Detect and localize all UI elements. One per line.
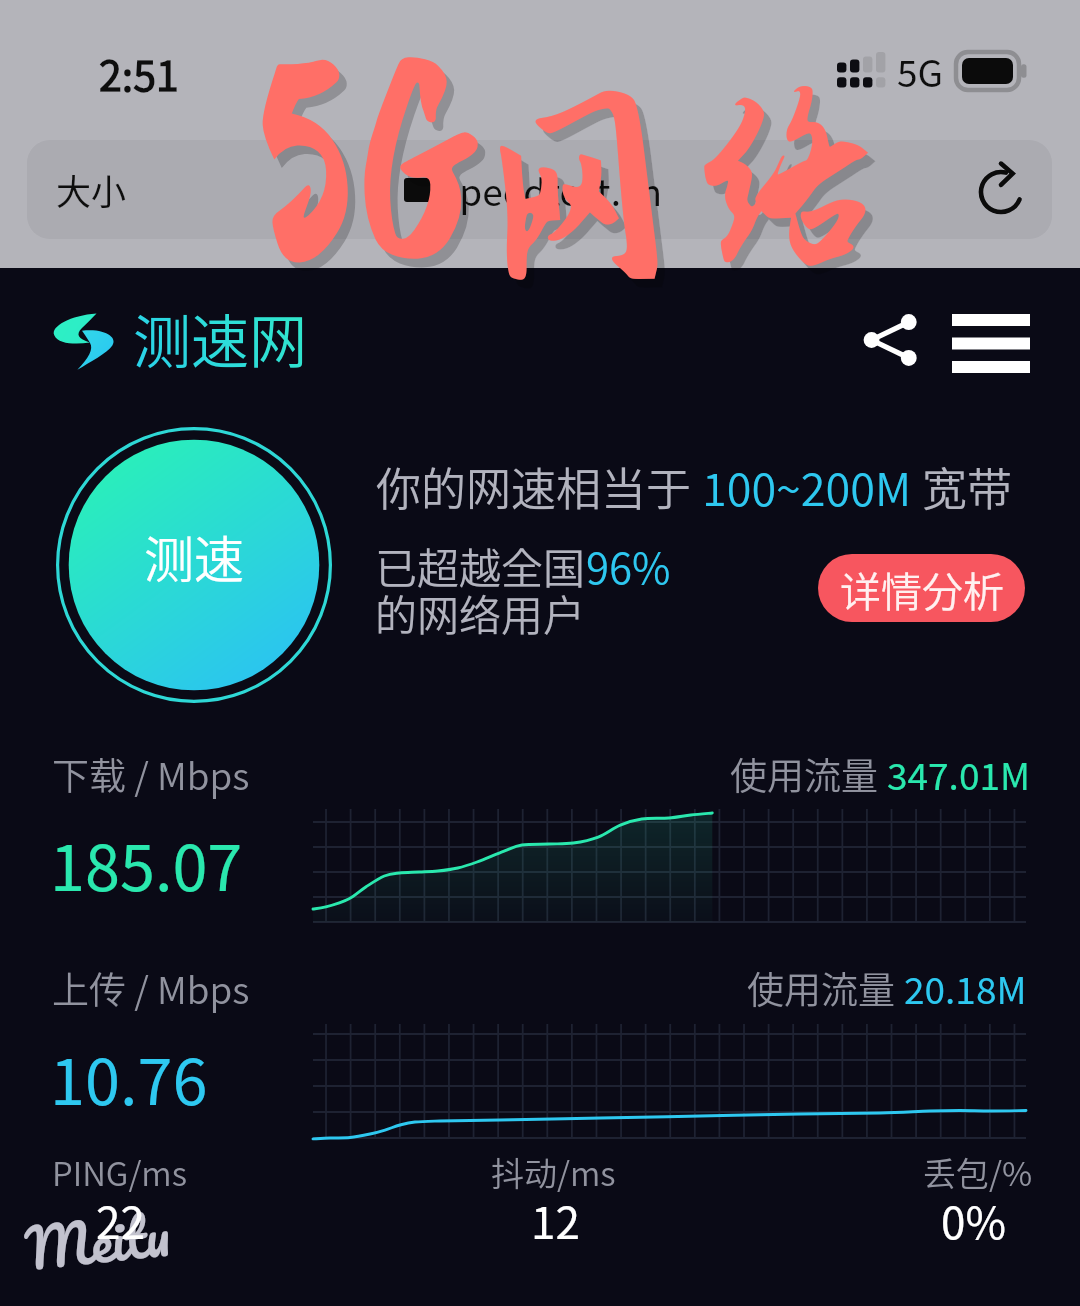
button[interactable]: Share <box>852 300 932 380</box>
staticText: 5G <box>253 33 490 316</box>
staticText: 详情分析 <box>840 559 1004 618</box>
staticText: 12 <box>531 1188 580 1252</box>
staticText: 网络 <box>475 68 906 322</box>
staticText: 100~200M <box>702 454 912 519</box>
staticText: speedtest.cn <box>442 163 663 217</box>
button[interactable]: Reload <box>970 159 1032 221</box>
staticText: 大小 <box>56 164 127 215</box>
staticText: 网络 <box>467 59 899 314</box>
staticText: 下载 / Mbps <box>52 747 250 801</box>
staticText: 抖动/ms <box>491 1148 616 1196</box>
staticText: 上传 / Mbps <box>52 961 250 1015</box>
staticText: PING/ms <box>52 1148 187 1196</box>
staticText: 22 <box>96 1188 145 1252</box>
staticText: 5G <box>246 24 483 308</box>
button[interactable]: 测速 <box>56 427 332 703</box>
staticText: 5G <box>897 44 944 98</box>
staticText: 2:51 <box>99 43 179 102</box>
button[interactable]: 大小 <box>27 140 1052 239</box>
staticText: 使用流量 <box>747 961 904 1015</box>
staticText: 已超越全国 <box>375 535 586 596</box>
staticText: 测速网 <box>133 296 308 380</box>
staticText: 使用流量 <box>730 747 887 801</box>
button[interactable]: 详情分析 <box>818 554 1025 622</box>
staticText: 的网络用户 <box>375 582 586 643</box>
staticText: 测速 <box>144 520 244 592</box>
staticText: 0% <box>941 1188 1006 1252</box>
staticText: 20.18M <box>904 961 1027 1015</box>
staticText: Meitu <box>20 1187 174 1294</box>
staticText: 10.76 <box>50 1032 208 1123</box>
staticText: 96% <box>586 535 671 596</box>
staticText: 185.07 <box>50 818 243 909</box>
staticText: 丢包/% <box>923 1148 1033 1196</box>
staticText: 你的网速相当于 <box>376 454 702 519</box>
staticText: 宽带 <box>912 454 1013 519</box>
button[interactable]: Menu <box>948 300 1034 386</box>
staticText: 347.01M <box>887 747 1031 801</box>
